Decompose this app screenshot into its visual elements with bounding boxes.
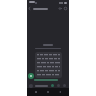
button[interactable]: Emoji bbox=[29, 84, 33, 88]
button[interactable] bbox=[34, 79, 58, 81]
button[interactable]: Call bbox=[63, 6, 68, 11]
button[interactable]: Video call bbox=[58, 6, 63, 11]
button[interactable]: Camera bbox=[56, 83, 61, 88]
button[interactable] bbox=[35, 52, 62, 78]
button[interactable]: Back bbox=[27, 6, 32, 11]
button[interactable]: Home bbox=[45, 89, 51, 95]
button[interactable] bbox=[35, 83, 50, 89]
button[interactable]: Attach file bbox=[50, 83, 55, 88]
button[interactable]: Recents bbox=[33, 89, 39, 95]
button[interactable]: Voice message bbox=[62, 83, 67, 88]
button[interactable]: Contact avatar bbox=[28, 73, 34, 79]
button[interactable]: Back bbox=[57, 89, 63, 95]
